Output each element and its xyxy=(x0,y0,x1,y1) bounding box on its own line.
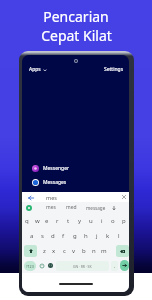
button[interactable]: Period xyxy=(111,261,118,271)
button[interactable]: Emoji xyxy=(39,261,44,270)
button[interactable]: Enter xyxy=(120,260,129,271)
button[interactable]: w xyxy=(32,215,42,227)
button[interactable]: q xyxy=(22,215,32,227)
staticText: w xyxy=(35,217,40,225)
button[interactable]: mes xyxy=(46,204,56,211)
button[interactable]: Messages xyxy=(22,175,129,189)
staticText: x xyxy=(52,247,56,255)
button[interactable]: a xyxy=(27,230,37,242)
button[interactable]: message xyxy=(86,205,106,211)
button[interactable]: y xyxy=(74,215,85,227)
button[interactable]: n xyxy=(89,245,99,257)
button[interactable]: s xyxy=(37,230,47,242)
button[interactable]: b xyxy=(79,245,89,257)
staticText: u xyxy=(89,217,93,225)
staticText: z xyxy=(43,247,46,255)
button[interactable]: u xyxy=(85,215,96,227)
staticText: m xyxy=(101,247,107,255)
button[interactable]: z xyxy=(39,245,49,257)
staticText: GN · RR · SK xyxy=(73,264,92,269)
staticText: k xyxy=(106,232,110,240)
button[interactable]: Sticker xyxy=(47,261,53,270)
staticText: . xyxy=(114,263,116,270)
staticText: g xyxy=(73,232,77,240)
staticText: n xyxy=(92,247,96,255)
button[interactable]: d xyxy=(47,230,58,242)
button[interactable]: Back xyxy=(26,193,35,202)
button[interactable]: med xyxy=(66,204,77,211)
staticText: s xyxy=(41,232,44,240)
staticText: i xyxy=(101,217,103,225)
staticText: d xyxy=(51,232,55,240)
button[interactable]: e xyxy=(42,215,52,227)
staticText: r xyxy=(56,217,59,225)
button[interactable]: Clear xyxy=(120,193,128,201)
button[interactable]: h xyxy=(80,230,91,242)
button[interactable]: g xyxy=(69,230,80,242)
staticText: e xyxy=(45,217,49,225)
button[interactable]: l xyxy=(113,230,124,242)
button[interactable]: Messenger xyxy=(22,161,129,175)
staticText: l xyxy=(118,232,120,240)
button[interactable]: t xyxy=(63,215,74,227)
button[interactable]: p xyxy=(118,215,129,227)
staticText: h xyxy=(84,232,88,240)
staticText: ?123 xyxy=(26,264,34,269)
button[interactable]: Apps xyxy=(29,66,47,73)
staticText: Apps xyxy=(29,66,41,73)
button[interactable]: m xyxy=(99,245,109,257)
staticText: f xyxy=(62,232,65,240)
staticText: Messages xyxy=(43,179,67,186)
staticText: b xyxy=(82,247,86,255)
button[interactable]: ?123 xyxy=(24,261,36,271)
staticText: t xyxy=(67,217,70,225)
staticText: Messenger xyxy=(43,165,70,172)
button[interactable]: Settings xyxy=(104,66,124,73)
button[interactable]: x xyxy=(49,245,59,257)
staticText: j xyxy=(96,232,98,240)
staticText: o xyxy=(111,217,115,225)
staticText: y xyxy=(78,217,82,225)
button[interactable]: k xyxy=(102,230,113,242)
button[interactable]: Shift xyxy=(24,245,37,257)
button[interactable]: Backspace xyxy=(116,245,129,257)
staticText: v xyxy=(72,247,76,255)
button[interactable]: j xyxy=(91,230,102,242)
button[interactable]: v xyxy=(69,245,79,257)
staticText: c xyxy=(63,247,66,255)
button[interactable]: i xyxy=(96,215,107,227)
staticText: mes xyxy=(46,194,57,201)
button[interactable]: More suggestions xyxy=(111,205,117,211)
staticText: q xyxy=(25,217,29,225)
staticText: Pencarian xyxy=(43,7,109,26)
button[interactable]: Google xyxy=(25,204,33,212)
button[interactable]: r xyxy=(52,215,63,227)
staticText: a xyxy=(30,232,34,240)
staticText: Cepat Kilat xyxy=(41,26,112,45)
button[interactable]: c xyxy=(59,245,69,257)
staticText: p xyxy=(122,217,126,225)
button[interactable]: o xyxy=(107,215,118,227)
button[interactable]: f xyxy=(58,230,69,242)
button[interactable]: GN · RR · SK xyxy=(56,261,109,271)
